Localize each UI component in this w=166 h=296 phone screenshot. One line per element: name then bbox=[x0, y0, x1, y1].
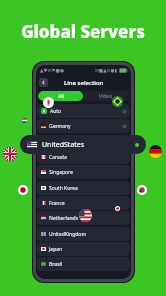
button[interactable]: Back bbox=[39, 78, 48, 87]
other: United States bbox=[79, 209, 92, 222]
button[interactable]: France bbox=[37, 196, 130, 210]
button[interactable]: All bbox=[38, 91, 83, 101]
staticText: Global Servers bbox=[0, 20, 166, 43]
staticText: Netherlands bbox=[49, 215, 79, 222]
staticText: ✉■▲≡●▮ bbox=[95, 68, 118, 73]
button[interactable]: Auto bbox=[37, 104, 130, 118]
button[interactable]: Canada bbox=[37, 150, 130, 164]
staticText: Video bbox=[99, 93, 113, 100]
button[interactable]: Brasil bbox=[37, 257, 130, 271]
staticText: Canada bbox=[49, 154, 67, 161]
other: Japan bbox=[18, 185, 28, 195]
staticText: Line selection bbox=[64, 79, 104, 87]
staticText: All bbox=[58, 93, 64, 100]
staticText: ▲♥✉⚑■● bbox=[40, 68, 64, 73]
button[interactable]: Video bbox=[83, 91, 129, 101]
staticText: France bbox=[49, 200, 65, 207]
button[interactable]: Singapore bbox=[37, 165, 130, 179]
other: Germany bbox=[149, 145, 162, 158]
other: South Korea bbox=[137, 185, 147, 195]
staticText: Auto bbox=[50, 108, 62, 115]
staticText: UnitedKingdom bbox=[49, 231, 87, 238]
staticText: South Korea bbox=[49, 185, 78, 192]
other: Japan bbox=[115, 206, 120, 211]
button[interactable]: UnitedStates bbox=[20, 135, 146, 154]
button[interactable]: Japan bbox=[37, 242, 130, 256]
other: Brazil bbox=[112, 96, 123, 107]
staticText: Japan bbox=[49, 246, 63, 253]
staticText: Brasil bbox=[49, 261, 62, 268]
other: United Kingdom bbox=[3, 147, 17, 161]
button[interactable]: Netherlands bbox=[37, 211, 130, 225]
button[interactable]: South Korea bbox=[37, 181, 130, 195]
other: Netherlands bbox=[22, 118, 27, 123]
staticText: Singapore bbox=[49, 169, 73, 176]
other: Canada bbox=[43, 97, 54, 108]
button[interactable]: Germany bbox=[37, 119, 130, 133]
button[interactable]: UnitedKingdom bbox=[37, 227, 130, 241]
staticText: UnitedStates bbox=[42, 140, 85, 150]
staticText: Germany bbox=[49, 123, 71, 130]
button[interactable] bbox=[37, 135, 130, 149]
